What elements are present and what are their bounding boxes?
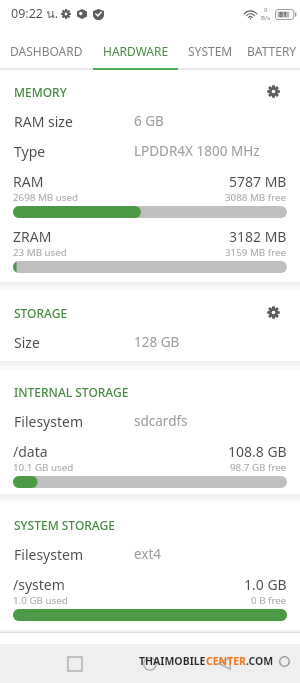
staticText: 108.8 GB: [228, 442, 287, 461]
staticText: /data: [13, 442, 48, 461]
staticText: sdcardfs: [134, 412, 188, 430]
staticText: 1.0 GB used: [13, 594, 68, 607]
staticText: 2698 MB used: [13, 191, 79, 204]
staticText: 6 GB: [134, 112, 164, 130]
button[interactable]: SYSTEM: [178, 33, 243, 68]
button[interactable]: RAM size: [0, 106, 300, 136]
button[interactable]: Size: [0, 327, 300, 357]
staticText: 1.0 GB: [244, 575, 287, 594]
staticText: BATTERY: [247, 43, 297, 59]
staticText: 128 GB: [134, 333, 180, 351]
staticText: 23 MB used: [13, 246, 67, 259]
staticText: CENTER: [206, 654, 246, 668]
button[interactable]: Settings: [260, 299, 286, 325]
staticText: 3182 MB: [229, 227, 287, 246]
button[interactable]: DASHBOARD: [0, 33, 93, 68]
staticText: STORAGE: [14, 305, 68, 321]
staticText: ext4: [134, 545, 162, 563]
button[interactable]: /data: [0, 436, 300, 494]
staticText: B/s: [261, 14, 271, 22]
staticText: RAM size: [14, 112, 73, 131]
staticText: Filesystem: [14, 545, 83, 564]
button[interactable]: RAM: [0, 166, 300, 221]
staticText: HARDWARE: [103, 43, 169, 59]
button[interactable]: Back: [210, 649, 239, 678]
staticText: Filesystem: [14, 412, 83, 431]
staticText: 10.1 GB used: [13, 461, 74, 474]
staticText: THAIMOBILE: [139, 654, 206, 668]
staticText: 3159 MB free: [225, 246, 287, 259]
staticText: /system: [13, 575, 65, 594]
button[interactable]: Recent apps: [60, 649, 89, 678]
staticText: .COM: [246, 654, 274, 668]
button[interactable]: Filesystem: [0, 406, 300, 436]
staticText: LPDDR4X 1800 MHz: [134, 142, 260, 160]
staticText: 0: [264, 6, 268, 14]
staticText: SYSTEM: [188, 43, 233, 59]
staticText: 0 B free: [251, 594, 287, 607]
button[interactable]: /system: [0, 569, 300, 630]
staticText: SYSTEM STORAGE: [14, 517, 115, 533]
staticText: 5787 MB: [229, 172, 287, 191]
staticText: Size: [14, 333, 40, 352]
staticText: ZRAM: [13, 227, 52, 246]
button[interactable]: ZRAM: [0, 221, 300, 282]
button[interactable]: HARDWARE: [93, 33, 178, 68]
button[interactable]: Home: [135, 649, 164, 678]
staticText: 09:22 น.: [11, 4, 59, 24]
staticText: 81: [279, 10, 288, 20]
button[interactable]: Settings: [260, 78, 286, 104]
staticText: Type: [14, 142, 46, 161]
button[interactable]: BATTERY: [243, 33, 300, 68]
staticText: 3088 MB free: [225, 191, 287, 204]
staticText: INTERNAL STORAGE: [14, 384, 129, 400]
staticText: RAM: [13, 172, 44, 191]
staticText: 98.7 GB free: [230, 461, 287, 474]
staticText: DASHBOARD: [10, 43, 83, 59]
button[interactable]: Filesystem: [0, 539, 300, 569]
staticText: MEMORY: [14, 84, 67, 100]
button[interactable]: Type: [0, 136, 300, 166]
